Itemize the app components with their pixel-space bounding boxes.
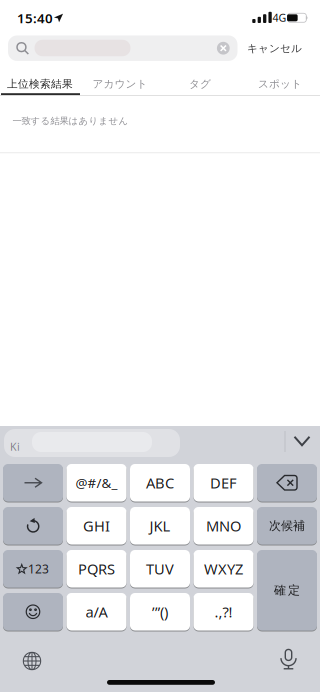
button[interactable]: .,?! — [193, 593, 253, 630]
button[interactable]: キャンセル — [247, 42, 302, 55]
button[interactable]: 次候補 — [257, 507, 317, 544]
staticText: DEF — [210, 473, 237, 492]
button[interactable]: Cursor right — [3, 464, 63, 501]
staticText: 123 — [28, 561, 49, 577]
staticText: 15:40 — [17, 9, 53, 27]
button[interactable]: ABC — [130, 464, 190, 501]
staticText: 一致する結果はありません — [12, 115, 128, 127]
button[interactable]: GHI — [66, 507, 126, 544]
staticText: PQRS — [78, 559, 115, 578]
staticText: JKL — [149, 516, 170, 535]
staticText: ABC — [146, 473, 174, 492]
staticText: TUV — [146, 559, 174, 578]
staticText: タグ — [189, 77, 211, 90]
staticText: Ki — [10, 439, 20, 454]
staticText: .,?! — [214, 602, 232, 621]
staticText: キャンセル — [247, 42, 302, 55]
staticText: 上位検索結果 — [7, 77, 73, 90]
staticText: GHI — [83, 516, 110, 535]
button[interactable]: Numbers — [3, 550, 63, 587]
button[interactable]: Emoji — [3, 593, 63, 630]
staticText: MNO — [206, 516, 241, 535]
button[interactable]: Dismiss keyboard — [285, 426, 319, 456]
button[interactable]: 上位検索結果 — [0, 71, 80, 97]
staticText: a/A — [85, 602, 107, 621]
staticText: アカウント — [92, 77, 147, 90]
button[interactable]: TUV — [130, 550, 190, 587]
staticText: 次候補 — [269, 518, 305, 533]
button[interactable]: スポット — [240, 71, 320, 97]
button[interactable]: ’”() — [130, 593, 190, 630]
button[interactable]: Delete — [257, 464, 317, 501]
staticText: ’”() — [152, 602, 168, 621]
button[interactable]: Next keyboard — [12, 641, 52, 681]
staticText: 確定 — [274, 583, 300, 598]
staticText: @#/&_ — [75, 474, 117, 492]
button[interactable]: タグ — [160, 71, 240, 97]
button[interactable]: PQRS — [66, 550, 126, 587]
button[interactable]: WXYZ — [193, 550, 253, 587]
button[interactable]: JKL — [130, 507, 190, 544]
button[interactable]: @#/&_ — [66, 464, 126, 501]
button[interactable]: 確定 — [257, 550, 317, 630]
button[interactable]: a/A — [66, 593, 126, 630]
staticText: スポット — [258, 77, 302, 90]
button[interactable]: Undo — [3, 507, 63, 544]
staticText: 4G — [272, 10, 286, 25]
button[interactable]: Clear text — [217, 42, 230, 55]
button[interactable]: アカウント — [80, 71, 160, 97]
button[interactable]: Dictation — [268, 640, 308, 680]
button[interactable]: MNO — [193, 507, 253, 544]
button[interactable]: DEF — [193, 464, 253, 501]
staticText: WXYZ — [204, 559, 243, 578]
